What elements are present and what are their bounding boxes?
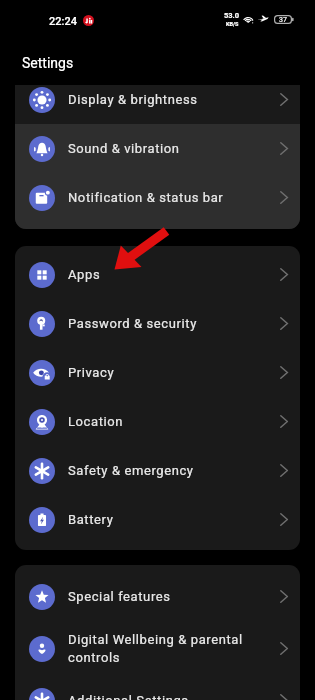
staticText: KB/S — [226, 21, 239, 27]
button[interactable]: Apps — [15, 250, 300, 299]
staticText: 22:24 — [49, 15, 77, 28]
staticText: Display & brightness — [68, 92, 274, 107]
staticText: Settings — [22, 55, 74, 71]
other: Additional Settings — [29, 688, 55, 700]
button[interactable]: Additional Settings — [15, 676, 300, 700]
button[interactable]: Password and security — [15, 299, 300, 348]
staticText: Password & security — [68, 316, 274, 331]
button[interactable]: Safety and emergency — [15, 446, 300, 495]
button[interactable]: Battery — [15, 495, 300, 544]
other: Digital Wellbeing and parental controls — [29, 636, 55, 662]
staticText: Apps — [68, 267, 274, 282]
staticText: Battery — [68, 512, 274, 527]
other: Password and security — [29, 311, 55, 337]
other: Special features — [29, 584, 55, 610]
staticText: 37 — [279, 16, 287, 24]
other: Privacy — [29, 360, 55, 386]
button[interactable]: Privacy — [15, 348, 300, 397]
button[interactable]: Digital Wellbeing and parental controls — [15, 621, 300, 676]
staticText: Location — [68, 414, 274, 429]
other: Safety and emergency — [29, 458, 55, 484]
staticText: Special features — [68, 589, 274, 604]
other: Battery — [29, 507, 55, 533]
other: Notification and status bar — [29, 185, 55, 211]
other: Apps — [29, 262, 55, 288]
other: Location — [29, 409, 55, 435]
staticText: Digital Wellbeing & parental controls — [68, 632, 274, 665]
staticText: Privacy — [68, 365, 274, 380]
staticText: 53.0 — [224, 11, 240, 20]
staticText: Notification & status bar — [68, 190, 274, 205]
staticText: Sound & vibration — [68, 141, 274, 156]
button[interactable]: Display and brightness — [15, 75, 300, 124]
button[interactable]: Notification and status bar — [15, 173, 300, 222]
staticText: Additional Settings — [68, 693, 274, 700]
button[interactable]: Location — [15, 397, 300, 446]
other: Display and brightness — [29, 87, 55, 113]
button[interactable]: Special features — [15, 572, 300, 621]
other: Sound and vibration — [29, 136, 55, 162]
staticText: Safety & emergency — [68, 463, 274, 478]
button[interactable]: Sound and vibration — [15, 124, 300, 173]
